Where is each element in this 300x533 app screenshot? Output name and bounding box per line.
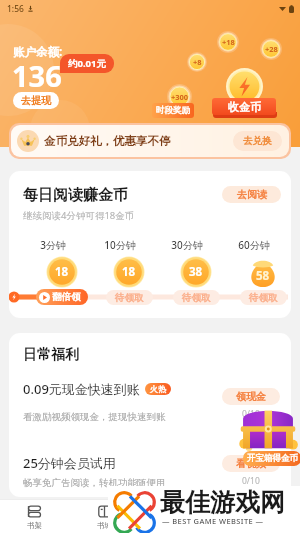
staticText: 3分钟: [37, 238, 69, 252]
button[interactable]: 领现金: [222, 388, 280, 405]
button[interactable]: 收金币: [212, 68, 276, 118]
staticText: 时段奖励: [156, 105, 190, 116]
staticText: 发现: [167, 521, 182, 530]
staticText: 金币兑好礼，优惠享不停: [44, 134, 171, 148]
staticText: 账户余额:: [13, 44, 63, 60]
staticText: 看视频: [236, 457, 266, 470]
staticText: 0/10: [242, 475, 260, 487]
button[interactable]: 发现: [154, 504, 194, 530]
staticText: 待领取: [182, 292, 211, 304]
staticText: 开宝箱得金币: [247, 453, 298, 464]
staticText: 0.09元现金快速到账: [23, 380, 140, 398]
button[interactable]: 去提现: [13, 92, 59, 109]
button[interactable]: 开宝箱得金币: [239, 406, 297, 464]
button[interactable]: 待领取: [173, 290, 220, 305]
staticText: +18: [222, 37, 235, 47]
staticText: 去阅读: [237, 188, 267, 201]
staticText: 每日阅读赚金币: [23, 186, 128, 205]
staticText: 去提现: [21, 94, 51, 107]
staticText: 去兑换: [243, 135, 272, 147]
staticText: 58: [256, 268, 270, 284]
staticText: 约0.01元: [68, 57, 106, 70]
staticText: 待领取: [115, 292, 144, 304]
staticText: 看激励视频领现金，提现快速到账: [23, 411, 166, 423]
staticText: 60分钟: [238, 238, 270, 252]
staticText: 我的: [237, 521, 252, 530]
staticText: 30分钟: [171, 238, 203, 252]
staticText: +8: [193, 57, 202, 67]
staticText: 领现金: [236, 390, 266, 403]
staticText: 0/10: [242, 408, 260, 420]
staticText: 书城: [97, 521, 112, 530]
staticText: 继续阅读4分钟可得18金币: [23, 209, 135, 222]
staticText: 最佳游戏网: [160, 487, 285, 518]
staticText: 18: [122, 264, 136, 280]
staticText: +28: [265, 44, 278, 54]
button[interactable]: 看视频: [222, 455, 280, 472]
button[interactable]: 书城: [84, 504, 124, 530]
button[interactable]: 待领取: [240, 290, 287, 305]
staticText: +300: [171, 92, 189, 102]
staticText: 火热: [150, 384, 166, 394]
staticText: 10分钟: [104, 238, 136, 252]
staticText: — BEST GAME WEBSITE —: [162, 516, 264, 526]
staticText: 1:56: [7, 3, 24, 15]
staticText: 38: [189, 264, 203, 280]
button[interactable]: 书架: [14, 504, 54, 530]
button[interactable]: 去兑换: [233, 131, 282, 151]
button[interactable]: 金币兑好礼，优惠享不停: [11, 125, 289, 157]
button[interactable]: 待领取: [106, 290, 153, 305]
staticText: 日常福利: [23, 346, 79, 364]
staticText: 翻倍领: [52, 291, 81, 303]
button[interactable]: 去阅读: [222, 186, 281, 203]
button[interactable]: 翻倍领: [36, 289, 88, 305]
staticText: 136: [12, 56, 62, 95]
staticText: 待领取: [249, 292, 278, 304]
staticText: 收金币: [228, 100, 261, 114]
staticText: 畅享免广告阅读，转机功能随便用: [23, 477, 166, 489]
staticText: 书架: [27, 521, 42, 530]
button[interactable]: 我的: [224, 504, 264, 530]
staticText: 25分钟会员试用: [23, 454, 116, 472]
staticText: 18: [55, 264, 69, 280]
